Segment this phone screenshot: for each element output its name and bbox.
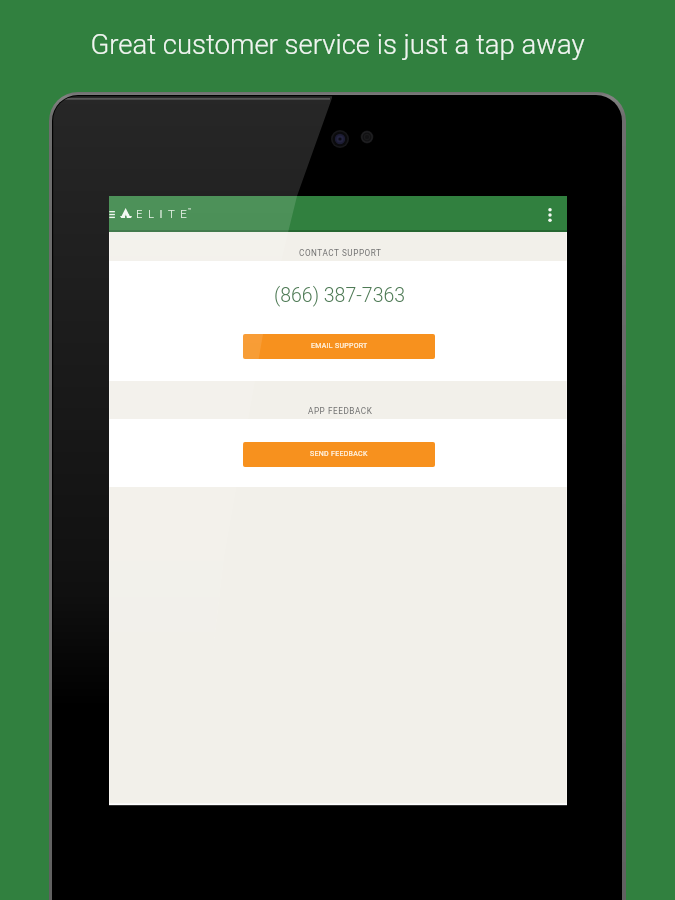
staticText: ELITE — [136, 208, 193, 221]
staticText: Great customer service is just a tap awa… — [90, 28, 585, 60]
staticText: SEND FEEDBACK — [310, 450, 368, 458]
button[interactable]: EMAIL SUPPORT — [243, 334, 435, 359]
staticText: (866) 387-7363 — [274, 284, 406, 307]
button[interactable]: Open navigation menu — [109, 196, 125, 230]
button[interactable]: SEND FEEDBACK — [243, 442, 435, 467]
staticText: CONTACT SUPPORT — [299, 248, 382, 258]
staticText: EMAIL SUPPORT — [311, 342, 368, 350]
button[interactable]: More options — [533, 196, 567, 232]
staticText: APP FEEDBACK — [308, 406, 373, 416]
staticText: ™ — [188, 207, 192, 213]
